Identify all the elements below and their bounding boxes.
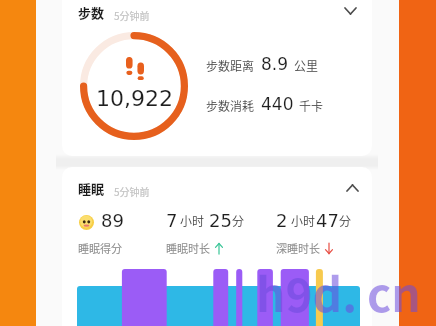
staticText: 步数消耗 [206,97,255,114]
staticText: 小时 [180,212,205,229]
staticText: 10,922 [96,86,173,112]
staticText: h9d. [256,259,358,326]
staticText: 5分钟前 [114,8,150,22]
staticText: 25 [209,210,232,231]
button[interactable]: Collapse steps section [336,0,364,25]
button[interactable]: Expand sleep section [338,174,366,202]
staticText: 89 [101,210,124,231]
staticText: 睡眠 [78,179,105,198]
staticText: 7 [166,210,178,231]
staticText: 8.9 [261,54,289,74]
staticText: 公里 [294,57,319,74]
staticText: 分 [232,212,245,229]
staticText: 5分钟前 [114,184,150,198]
staticText: 分 [339,212,352,229]
staticText: 47 [316,210,339,231]
staticText: 步数距离 [206,57,255,74]
staticText: 小时 [291,212,316,229]
button[interactable]: 睡眠 [62,167,372,326]
staticText: 睡眠时长 [166,240,210,256]
staticText: 深睡时长 [276,240,320,256]
staticText: 2 [276,210,288,231]
staticText: 440 [261,94,294,114]
button[interactable]: 步数 [62,0,372,156]
staticText: 睡眠得分 [78,240,122,256]
staticText: cn [367,259,421,326]
staticText: 千卡 [299,97,324,114]
staticText: 步数 [78,3,105,22]
